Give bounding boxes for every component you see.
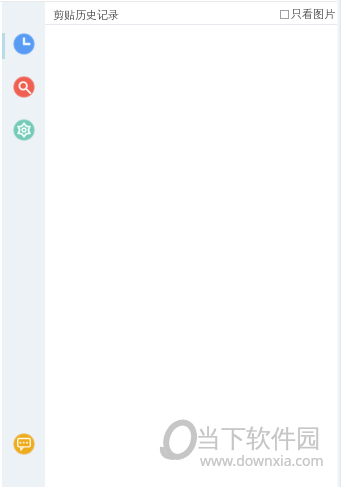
button[interactable]: Search xyxy=(13,76,35,98)
button[interactable]: Settings xyxy=(13,119,35,141)
staticText: 当下软件园 xyxy=(196,423,321,454)
staticText: 只看图片 xyxy=(291,7,335,21)
staticText: 剪贴历史记录 xyxy=(53,8,119,22)
button[interactable]: Feedback xyxy=(13,433,35,455)
button[interactable]: 只看图片 xyxy=(280,7,335,21)
button[interactable]: History xyxy=(13,33,35,55)
staticText: www.downxia.com xyxy=(200,451,324,470)
